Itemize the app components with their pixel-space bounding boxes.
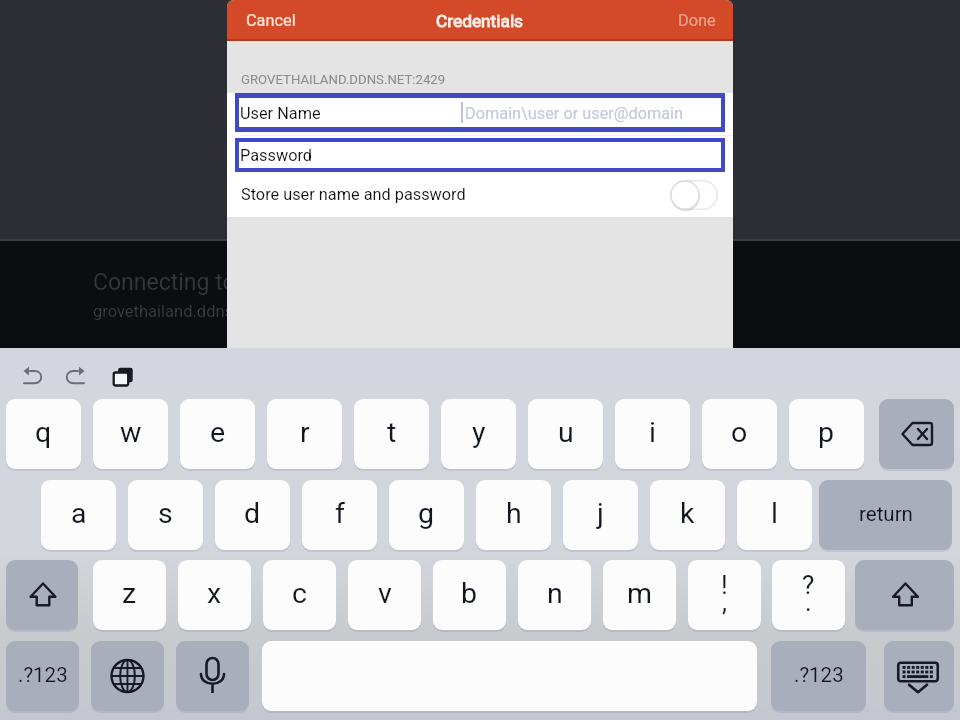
staticText: .?123 <box>794 663 844 687</box>
button[interactable]: Backspace <box>879 399 954 469</box>
button[interactable]: Shift <box>855 560 954 630</box>
staticText: o <box>731 416 748 449</box>
staticText: g <box>418 497 435 530</box>
button[interactable]: ! , <box>688 560 761 630</box>
button[interactable]: .?123 <box>771 641 866 711</box>
staticText: q <box>35 416 52 449</box>
button[interactable]: Done <box>663 0 733 41</box>
button[interactable]: g <box>389 480 464 550</box>
button[interactable]: d <box>215 480 290 550</box>
button[interactable]: Shift <box>6 560 78 630</box>
button[interactable]: u <box>528 399 603 469</box>
button[interactable]: Copy <box>105 363 137 395</box>
staticText: r <box>300 416 310 449</box>
button[interactable]: x <box>178 560 251 630</box>
staticText: v <box>378 577 392 610</box>
button[interactable]: j <box>563 480 638 550</box>
button[interactable]: Store user name and password <box>670 180 718 210</box>
staticText: j <box>597 497 604 530</box>
staticText: f <box>335 497 345 530</box>
staticText: z <box>122 577 137 610</box>
button[interactable]: Undo <box>16 362 52 398</box>
staticText: k <box>680 497 695 530</box>
button[interactable]: q <box>6 399 81 469</box>
staticText: n <box>547 577 563 610</box>
staticText: , <box>722 588 727 617</box>
button[interactable]: Hide keyboard <box>884 641 954 711</box>
button[interactable]: return <box>819 480 952 550</box>
button[interactable]: n <box>518 560 591 630</box>
button[interactable]: Voice input <box>176 641 249 711</box>
staticText: return <box>859 502 913 526</box>
staticText: l <box>771 497 778 530</box>
staticText: ? <box>802 570 815 600</box>
button[interactable]: Cancel <box>227 0 311 41</box>
button[interactable]: z <box>93 560 166 630</box>
staticText: Connecting to <box>93 269 236 296</box>
button[interactable]: Switch language <box>91 641 164 711</box>
button[interactable]: m <box>603 560 676 630</box>
button[interactable]: Redo <box>60 362 96 398</box>
staticText: y <box>472 416 486 449</box>
button[interactable]: Password <box>227 138 733 172</box>
button[interactable]: c <box>263 560 336 630</box>
staticText: Domain\user or user@domain <box>465 104 684 123</box>
staticText: c <box>292 577 307 610</box>
staticText: w <box>120 416 142 449</box>
staticText: u <box>558 416 574 449</box>
staticText: p <box>818 416 835 449</box>
button[interactable]: v <box>348 560 421 630</box>
staticText: GROVETHAILAND.DDNS.NET:2429 <box>241 72 446 87</box>
button[interactable]: .?123 <box>6 641 79 711</box>
staticText: Password <box>240 146 312 165</box>
staticText: h <box>506 497 522 530</box>
staticText: ! <box>721 570 728 600</box>
staticText: .?123 <box>18 663 68 687</box>
button[interactable]: k <box>650 480 725 550</box>
button[interactable]: l <box>737 480 812 550</box>
staticText: grovethailand.ddns.net:2429 <box>93 302 302 321</box>
staticText: e <box>210 416 226 449</box>
button[interactable]: b <box>433 560 506 630</box>
staticText: . <box>805 588 812 617</box>
button[interactable]: w <box>93 399 168 469</box>
staticText: m <box>627 577 652 610</box>
staticText: x <box>207 577 222 610</box>
button[interactable]: p <box>789 399 864 469</box>
staticText: b <box>461 577 478 610</box>
button[interactable]: User Name <box>227 93 733 132</box>
button[interactable]: e <box>180 399 255 469</box>
button[interactable]: a <box>41 480 116 550</box>
staticText: User Name <box>240 104 321 123</box>
button[interactable]: r <box>267 399 342 469</box>
staticText: t <box>387 416 397 449</box>
staticText: Store user name and password <box>241 185 466 204</box>
staticText: d <box>244 497 261 530</box>
button[interactable]: f <box>302 480 377 550</box>
button[interactable]: y <box>441 399 516 469</box>
button[interactable]: o <box>702 399 777 469</box>
staticText: a <box>71 497 87 530</box>
staticText: Done <box>678 11 716 30</box>
button[interactable]: ? . <box>772 560 845 630</box>
button[interactable]: t <box>354 399 429 469</box>
button[interactable]: Store user name and password <box>227 172 733 217</box>
button[interactable]: i <box>615 399 690 469</box>
button[interactable]: h <box>476 480 551 550</box>
staticText: Cancel <box>246 11 296 30</box>
staticText: i <box>649 416 656 449</box>
staticText: s <box>158 497 173 530</box>
staticText: Credentials <box>436 11 524 31</box>
button[interactable]: s <box>128 480 203 550</box>
